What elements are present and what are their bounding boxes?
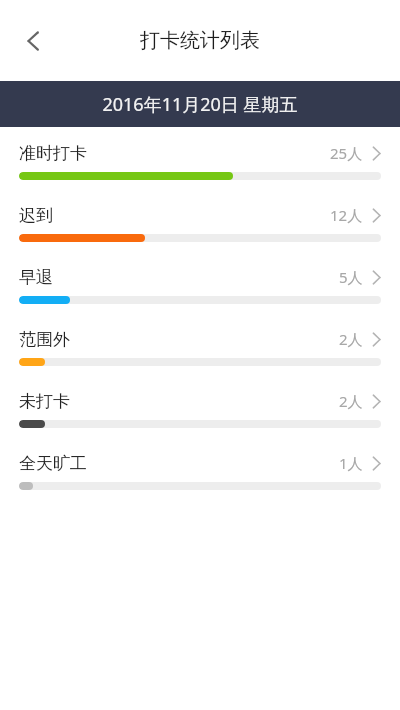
staticText: 5人: [339, 267, 363, 287]
staticText: 2人: [339, 391, 363, 411]
staticText: 早退: [19, 267, 53, 288]
button[interactable]: 准时打卡: [0, 134, 400, 196]
staticText: 1人: [339, 453, 363, 473]
button[interactable]: 范围外: [0, 320, 400, 382]
button[interactable]: 早退: [0, 258, 400, 320]
staticText: 迟到: [19, 205, 53, 226]
button[interactable]: 全天旷工: [0, 444, 400, 506]
staticText: 2人: [339, 329, 363, 349]
staticText: 范围外: [19, 329, 70, 350]
staticText: 打卡统计列表: [140, 28, 260, 53]
staticText: 全天旷工: [19, 453, 87, 474]
button[interactable]: 迟到: [0, 196, 400, 258]
staticText: 2016年11月20日 星期五: [102, 92, 298, 117]
button[interactable]: Back: [6, 13, 62, 69]
staticText: 12人: [330, 205, 363, 225]
staticText: 未打卡: [19, 391, 70, 412]
staticText: 准时打卡: [19, 143, 87, 164]
staticText: 25人: [330, 143, 363, 163]
button[interactable]: 未打卡: [0, 382, 400, 444]
